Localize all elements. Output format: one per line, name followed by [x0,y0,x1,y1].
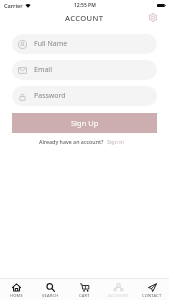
staticText: HOME [10,293,23,298]
staticText: SEARCH [42,293,59,298]
button[interactable]: Sign in [107,138,125,145]
button[interactable]: Settings [146,10,160,24]
button[interactable]: SEARCH [33,279,67,300]
staticText: CART [79,293,90,298]
button[interactable]: Password [12,86,157,106]
button[interactable]: Sign Up [12,113,157,133]
button[interactable]: HOME [0,279,33,300]
staticText: Full Name [34,39,68,49]
button[interactable]: ACCOUNT [101,279,135,300]
staticText: Email [34,65,52,75]
staticText: Sign Up [71,118,99,128]
button[interactable]: Full Name [12,34,157,54]
staticText: ACCOUNT [65,13,104,23]
staticText: Password [34,91,66,101]
button[interactable]: CONTACT [135,279,169,300]
button[interactable]: CART [67,279,101,300]
staticText: 12:55 PM [74,2,96,9]
staticText: Carrier [4,2,23,9]
staticText: Sign in [107,138,125,145]
staticText: CONTACT [142,293,162,298]
button[interactable]: Email [12,60,157,80]
staticText: Already have an account? [39,138,104,145]
staticText: ACCOUNT [108,293,129,298]
